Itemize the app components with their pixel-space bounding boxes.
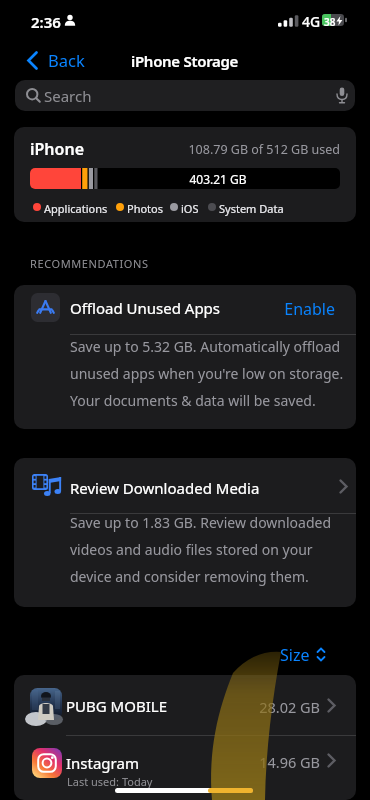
staticText: Back — [48, 49, 85, 71]
button[interactable]: Instagram — [14, 735, 356, 800]
staticText: Offload Unused Apps — [70, 298, 221, 318]
staticText: Save up to 5.32 GB. Automatically offloa… — [70, 337, 344, 410]
staticText: RECOMMENDATIONS — [30, 256, 149, 271]
staticText: 2:36 — [31, 12, 61, 32]
staticText: Applications — [44, 201, 108, 216]
staticText: Search — [44, 86, 92, 106]
button[interactable]: Review Downloaded Media — [14, 458, 356, 511]
button[interactable]: Size — [280, 644, 330, 668]
staticText: Instagram — [66, 753, 139, 773]
staticText: iPhone Storage — [131, 51, 239, 71]
staticText: 108.79 GB of 512 GB used — [14, 141, 340, 158]
staticText: Review Downloaded Media — [70, 478, 260, 498]
staticText: iPhone — [30, 138, 85, 160]
button[interactable]: Search — [15, 80, 355, 111]
button[interactable]: Offload Unused Apps — [14, 285, 356, 332]
button[interactable]: PUBG MOBILE — [14, 675, 356, 735]
staticText: Save up to 1.83 GB. Review downloaded vi… — [70, 513, 332, 586]
staticText: System Data — [219, 201, 284, 216]
staticText: iOS — [181, 201, 199, 216]
staticText: 38 — [324, 15, 336, 29]
staticText: 28.02 GB — [14, 697, 320, 717]
staticText: Last used: Today — [67, 774, 153, 789]
staticText: 403.21 GB — [158, 171, 278, 187]
staticText: PUBG MOBILE — [66, 696, 167, 716]
button[interactable]: Back — [16, 45, 108, 75]
staticText: 4G — [302, 12, 321, 31]
staticText: Enable — [14, 298, 335, 320]
staticText: 14.96 GB — [14, 752, 320, 772]
staticText: Photos — [127, 201, 164, 216]
staticText: Size — [280, 644, 310, 666]
